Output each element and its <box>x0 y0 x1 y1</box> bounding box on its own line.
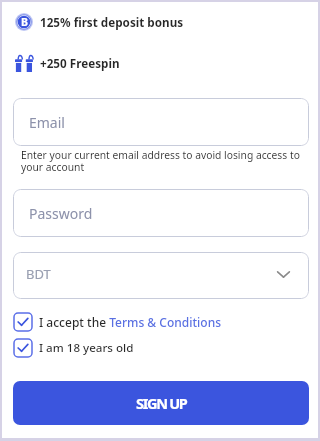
staticText: B <box>21 15 28 29</box>
staticText: SIGN UP <box>136 393 187 413</box>
other: Open currency dropdown <box>277 271 290 278</box>
staticText: Email <box>29 113 65 132</box>
staticText: I accept the Terms & Conditions <box>39 314 222 330</box>
button[interactable]: Email <box>13 98 309 146</box>
staticText: Enter your current email address to avoi… <box>21 148 308 174</box>
button[interactable]: Password <box>13 189 309 237</box>
staticText: 125% first deposit bonus <box>40 14 184 30</box>
staticText: I am 18 years old <box>39 340 134 356</box>
staticText: +250 Freespin <box>40 55 120 71</box>
button[interactable]: BDT <box>13 252 309 299</box>
button[interactable]: SIGN UP <box>13 381 309 425</box>
button[interactable]: I am 18 years old <box>14 339 318 357</box>
staticText: BDT <box>26 265 51 283</box>
button[interactable]: I accept the Terms & Conditions <box>14 313 318 331</box>
staticText: Password <box>29 204 93 223</box>
